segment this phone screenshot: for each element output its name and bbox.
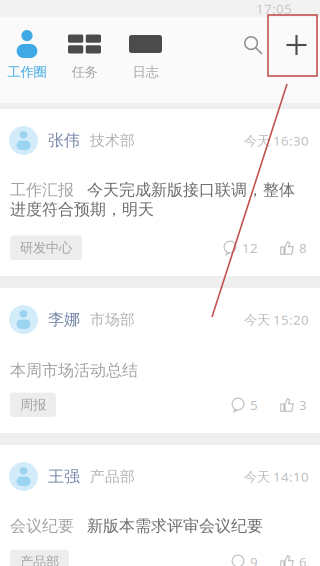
staticText: 5 <box>250 396 258 414</box>
staticText: 12 <box>242 239 258 257</box>
staticText: 今天 15:20 <box>244 311 309 328</box>
staticText: 进度符合预期，明天 <box>10 200 154 219</box>
staticText: 任务 <box>71 64 97 80</box>
staticText: 工作汇报 <box>10 180 74 200</box>
staticText: 产品部 <box>20 554 59 566</box>
staticText: 张伟 <box>48 131 80 150</box>
button[interactable]: 张伟 <box>0 109 320 276</box>
staticText: 17:05 <box>256 0 292 17</box>
staticText: 今天 14:10 <box>244 468 309 485</box>
button[interactable]: 搜索 <box>233 30 273 90</box>
staticText: 工作圈 <box>7 64 46 80</box>
button[interactable]: 日志 <box>115 17 176 103</box>
button[interactable]: 王强 <box>0 445 320 566</box>
staticText: 3 <box>299 396 307 414</box>
staticText: 9 <box>250 553 258 566</box>
staticText: 今天 16:30 <box>244 132 309 149</box>
staticText: 8 <box>299 239 307 257</box>
staticText: 市场部 <box>90 310 135 328</box>
staticText: 6 <box>299 553 307 566</box>
button[interactable]: 新建 <box>273 30 320 90</box>
staticText: 今天完成新版接口联调，整体 <box>87 180 295 200</box>
staticText: 王强 <box>48 467 80 486</box>
staticText: 日志 <box>132 64 158 80</box>
staticText: 周报 <box>20 397 46 413</box>
staticText: 会议纪要 <box>10 516 74 536</box>
staticText: 新版本需求评审会议纪要 <box>87 516 263 536</box>
staticText: 产品部 <box>90 467 135 485</box>
button[interactable]: 任务 <box>54 17 115 103</box>
button[interactable]: 李娜 <box>0 288 320 433</box>
staticText: 研发中心 <box>20 240 72 256</box>
staticText: 本周市场活动总结 <box>10 361 138 380</box>
button[interactable]: 工作圈 <box>0 17 54 103</box>
staticText: 技术部 <box>90 131 135 149</box>
staticText: 李娜 <box>48 310 80 329</box>
